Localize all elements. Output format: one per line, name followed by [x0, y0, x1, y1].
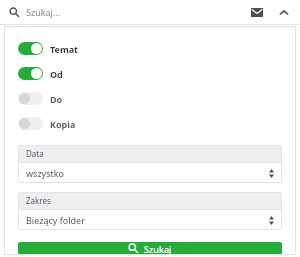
button[interactable]: wszystko — [18, 163, 282, 183]
button[interactable]: Temat — [18, 39, 282, 58]
staticText: Od — [50, 68, 63, 80]
button[interactable]: Szukaj — [18, 242, 282, 255]
staticText: Szukaj — [144, 243, 172, 255]
staticText: Szukaj... — [26, 6, 61, 18]
staticText: Do — [50, 93, 63, 105]
staticText: Zakres — [26, 195, 51, 206]
staticText: Kopia — [50, 118, 76, 130]
button[interactable]: Kopia — [18, 114, 282, 133]
button[interactable]: Szukaj... — [9, 0, 247, 24]
staticText: Bieżący folder — [26, 214, 269, 226]
button[interactable]: Collapse — [275, 3, 293, 21]
staticText: Temat — [50, 43, 79, 55]
button[interactable]: Od — [18, 64, 282, 83]
button[interactable]: Mail — [247, 2, 267, 22]
staticText: wszystko — [26, 167, 269, 179]
button[interactable]: Bieżący folder — [18, 210, 282, 230]
staticText: Data — [26, 148, 44, 159]
button[interactable]: Do — [18, 89, 282, 108]
